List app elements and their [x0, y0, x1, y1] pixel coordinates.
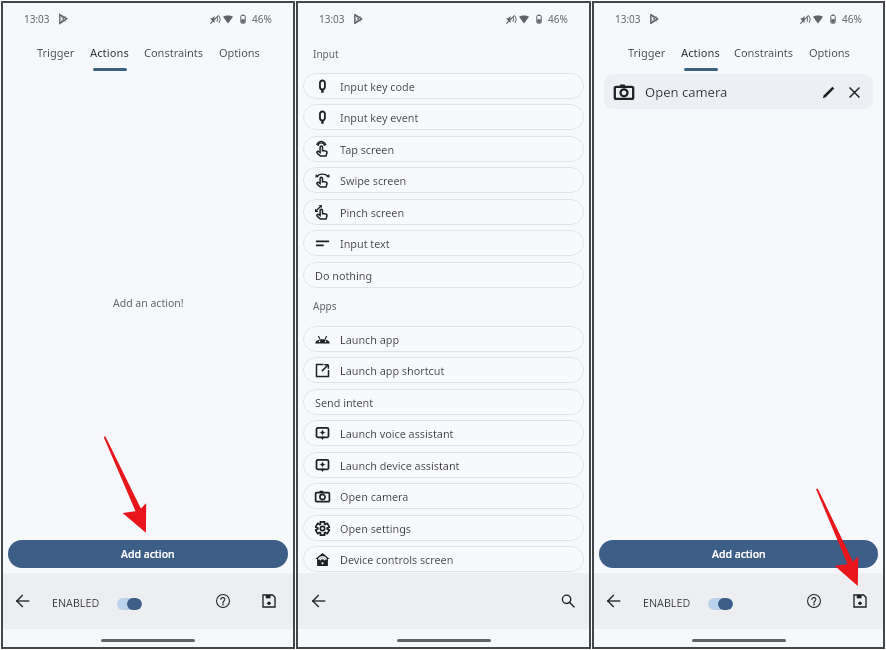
staticText: ENABLED	[643, 596, 691, 611]
staticText: Actions	[90, 45, 129, 60]
staticText: 13:03	[615, 12, 641, 26]
button[interactable]: Launch app shortcut	[303, 357, 584, 383]
button[interactable]: ENABLED	[52, 592, 142, 615]
button[interactable]: Help	[210, 588, 236, 614]
button[interactable]: Do nothing	[303, 262, 584, 288]
button[interactable]: Swipe screen	[303, 167, 584, 193]
staticText: 13:03	[319, 12, 345, 26]
button[interactable]: Edit	[817, 81, 839, 103]
button[interactable]: Trigger	[628, 40, 666, 68]
button[interactable]: Tap screen	[303, 136, 584, 162]
staticText: Open camera	[645, 83, 728, 101]
staticText: 46%	[548, 12, 568, 26]
button[interactable]: Save	[256, 588, 282, 614]
staticText: Do nothing	[315, 268, 373, 283]
staticText: Tap screen	[340, 142, 395, 157]
button[interactable]: Open camera	[604, 74, 873, 109]
staticText: Actions	[681, 45, 720, 60]
button[interactable]: Device controls screen	[303, 546, 584, 572]
staticText: Input key code	[340, 79, 415, 94]
button[interactable]: Pinch screen	[303, 199, 584, 225]
button[interactable]: Constraints	[144, 40, 204, 68]
button[interactable]: Save	[847, 588, 873, 614]
staticText: Open settings	[340, 521, 411, 536]
button[interactable]: Back	[10, 588, 36, 614]
staticText: Apps	[313, 299, 337, 313]
button[interactable]: Input key event	[303, 104, 584, 130]
staticText: Options	[809, 45, 850, 60]
staticText: Constraints	[144, 45, 204, 60]
staticText: Add an action!	[113, 296, 184, 310]
staticText: Swipe screen	[340, 173, 407, 188]
button[interactable]: Send intent	[303, 389, 584, 415]
staticText: Launch device assistant	[340, 458, 460, 473]
staticText: Send intent	[315, 395, 374, 410]
button[interactable]: Help	[801, 588, 827, 614]
button[interactable]: Add action	[8, 540, 288, 568]
staticText: Constraints	[734, 45, 794, 60]
staticText: 46%	[842, 12, 862, 26]
button[interactable]: Open camera	[303, 483, 584, 509]
staticText: Launch app	[340, 332, 400, 347]
button[interactable]: Launch device assistant	[303, 452, 584, 478]
button[interactable]: Constraints	[734, 40, 794, 68]
staticText: ENABLED	[52, 596, 100, 611]
button[interactable]: Add action	[599, 540, 878, 568]
staticText: Trigger	[37, 45, 75, 60]
staticText: 46%	[252, 12, 272, 26]
staticText: Add action	[712, 547, 766, 561]
staticText: Input text	[340, 236, 390, 251]
staticText: 13:03	[24, 12, 50, 26]
button[interactable]: Options	[219, 40, 260, 68]
staticText: Add action	[121, 547, 175, 561]
button[interactable]: Search	[555, 588, 581, 614]
button[interactable]: Back	[601, 588, 627, 614]
staticText: Options	[219, 45, 260, 60]
button[interactable]: Launch app	[303, 326, 584, 352]
button[interactable]: Open settings	[303, 515, 584, 541]
staticText: Launch app shortcut	[340, 363, 445, 378]
button[interactable]: ENABLED	[643, 592, 733, 615]
button[interactable]: Back	[306, 588, 332, 614]
button[interactable]: Actions	[90, 40, 129, 71]
staticText: Input key event	[340, 110, 419, 125]
button[interactable]: Options	[809, 40, 850, 68]
staticText: Input	[313, 47, 339, 61]
button[interactable]: Trigger	[37, 40, 75, 68]
staticText: Open camera	[340, 489, 409, 504]
button[interactable]: Actions	[681, 40, 720, 71]
staticText: Device controls screen	[340, 552, 454, 567]
staticText: Launch voice assistant	[340, 426, 454, 441]
staticText: Trigger	[628, 45, 666, 60]
button[interactable]: Remove	[843, 81, 865, 103]
button[interactable]: Input text	[303, 230, 584, 256]
staticText: Pinch screen	[340, 205, 405, 220]
button[interactable]: Input key code	[303, 73, 584, 99]
button[interactable]: Launch voice assistant	[303, 420, 584, 446]
